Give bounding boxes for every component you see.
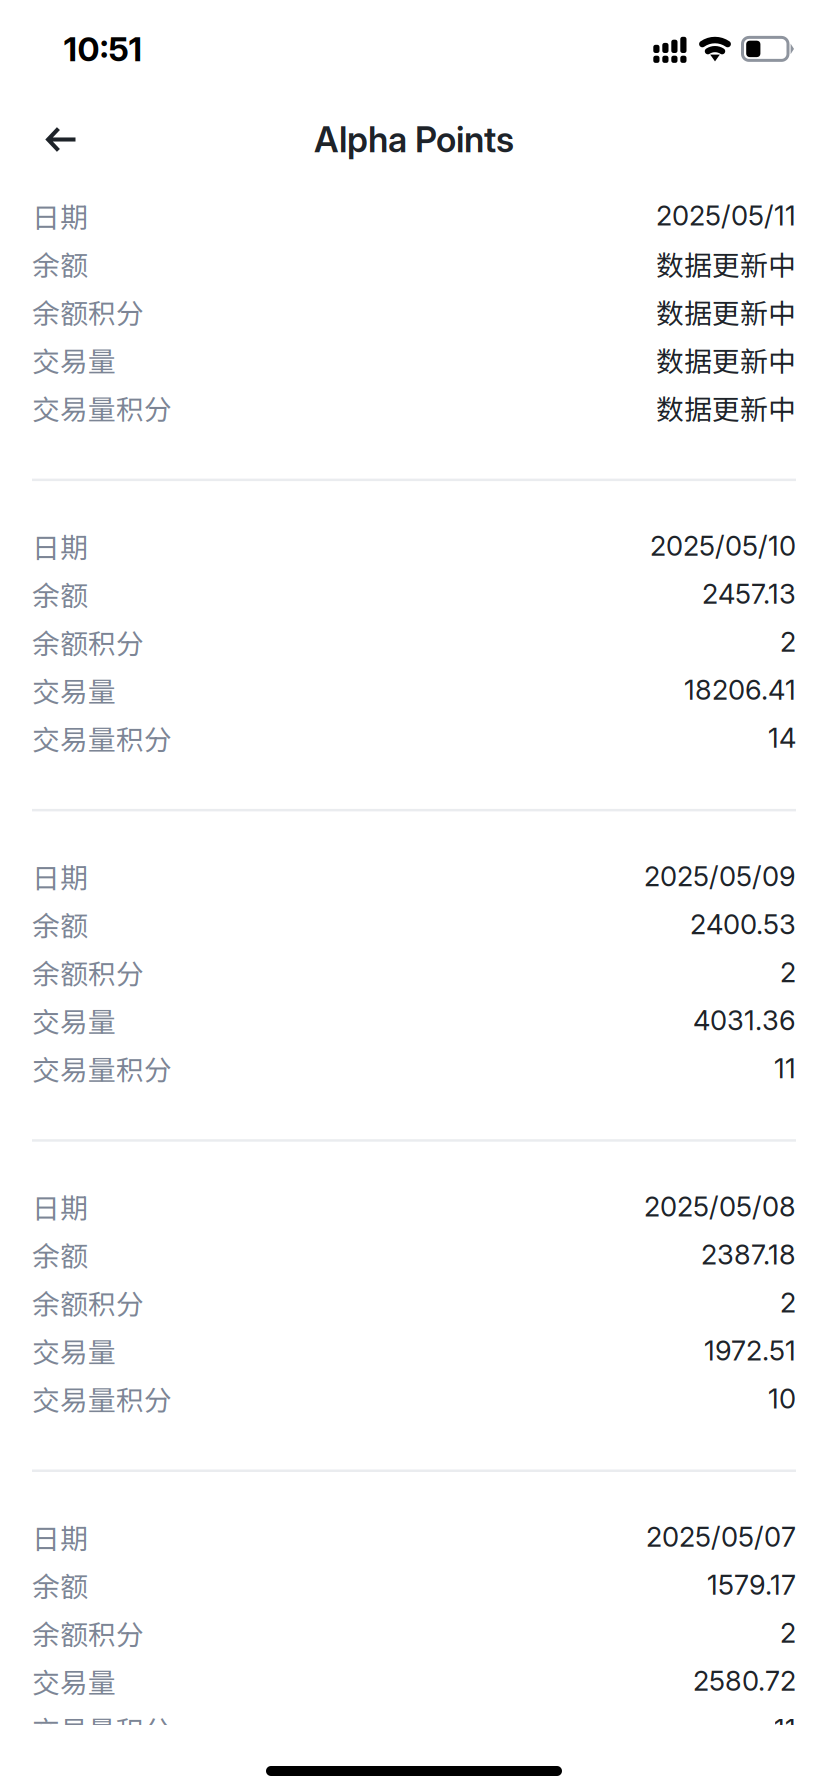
staticText: 11 — [774, 1052, 796, 1085]
staticText: 日期 — [32, 526, 88, 566]
staticText: 18206.41 — [684, 673, 796, 706]
staticText: 交易量 — [32, 1661, 116, 1701]
staticText: 交易量 — [32, 1000, 116, 1040]
staticText: 余额 — [32, 1234, 88, 1275]
staticText: 2025/05/08 — [644, 1190, 796, 1223]
staticText: 2025/05/11 — [656, 199, 796, 232]
staticText: 2400.53 — [690, 908, 796, 941]
staticText: 2025/05/10 — [650, 529, 796, 562]
staticText: 2457.13 — [702, 577, 796, 610]
staticText: 交易量积分 — [32, 1378, 172, 1419]
staticText: 10 — [768, 1382, 796, 1415]
staticText: 2580.72 — [693, 1664, 796, 1697]
staticText: 数据更新中 — [656, 387, 796, 428]
staticText: Alpha Points — [314, 118, 514, 160]
staticText: 余额 — [32, 1565, 88, 1605]
staticText: 余额 — [32, 574, 88, 614]
staticText: 2 — [780, 956, 796, 989]
staticText: 数据更新中 — [656, 243, 796, 284]
staticText: 2 — [780, 1286, 796, 1319]
staticText: 余额 — [32, 243, 88, 284]
staticText: 日期 — [32, 195, 88, 236]
staticText: 10:51 — [63, 29, 142, 69]
staticText: 数据更新中 — [656, 339, 796, 380]
staticText: 2 — [780, 625, 796, 658]
staticText: 2025/05/09 — [644, 860, 796, 893]
staticText: 交易量 — [32, 1330, 116, 1371]
staticText: 余额积分 — [32, 1282, 144, 1323]
staticText: 交易量 — [32, 670, 116, 710]
staticText: 2387.18 — [701, 1238, 796, 1271]
staticText: 余额积分 — [32, 952, 144, 992]
staticText: 交易量积分 — [32, 1048, 172, 1088]
staticText: 交易量 — [32, 339, 116, 380]
staticText: 1972.51 — [704, 1334, 796, 1367]
staticText: 日期 — [32, 856, 88, 896]
staticText: 交易量积分 — [32, 387, 172, 428]
staticText: 4031.36 — [693, 1004, 796, 1037]
staticText: 数据更新中 — [656, 291, 796, 332]
staticText: 交易量积分 — [32, 1709, 172, 1749]
staticText: 11 — [774, 1712, 796, 1745]
staticText: 余额积分 — [32, 291, 144, 332]
staticText: 2 — [780, 1616, 796, 1649]
staticText: 交易量积分 — [32, 718, 172, 758]
staticText: 余额积分 — [32, 622, 144, 662]
button[interactable]: Back — [0, 110, 111, 169]
staticText: 余额 — [32, 904, 88, 944]
staticText: 14 — [768, 721, 796, 754]
staticText: 日期 — [32, 1186, 88, 1227]
staticText: 日期 — [32, 1517, 88, 1557]
staticText: 2025/05/07 — [646, 1520, 796, 1553]
staticText: 余额积分 — [32, 1613, 144, 1653]
staticText: 1579.17 — [707, 1568, 796, 1601]
